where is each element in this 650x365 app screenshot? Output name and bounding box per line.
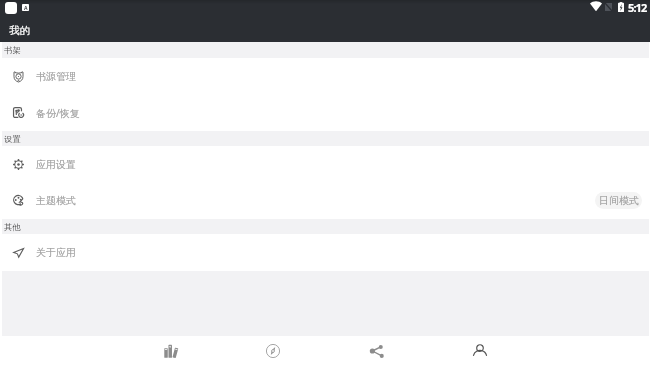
button[interactable]: Share xyxy=(351,336,402,365)
button[interactable]: Profile xyxy=(454,336,505,365)
button[interactable]: Explore xyxy=(247,336,298,365)
button[interactable]: 书源管理 xyxy=(0,58,650,95)
staticText: 我的 xyxy=(9,24,30,37)
button[interactable]: 应用设置 xyxy=(0,146,650,182)
staticText: 其他 xyxy=(4,222,21,232)
button[interactable]: Bookshelf xyxy=(145,336,196,365)
button[interactable]: 备份/恢复 xyxy=(0,94,650,131)
staticText: 备份/恢复 xyxy=(36,106,80,120)
staticText: 5:12 xyxy=(628,0,647,15)
staticText: 应用设置 xyxy=(36,158,76,171)
staticText: 主题模式 xyxy=(36,194,76,207)
staticText: 关于应用 xyxy=(36,246,76,259)
staticText: 书架 xyxy=(4,45,21,55)
staticText: 设置 xyxy=(4,134,21,144)
staticText: 书源管理 xyxy=(36,70,76,83)
button[interactable]: 关于应用 xyxy=(0,234,650,271)
staticText: 日间模式 xyxy=(599,194,639,207)
button[interactable]: 主题模式 xyxy=(0,182,650,218)
staticText: A xyxy=(24,4,28,11)
